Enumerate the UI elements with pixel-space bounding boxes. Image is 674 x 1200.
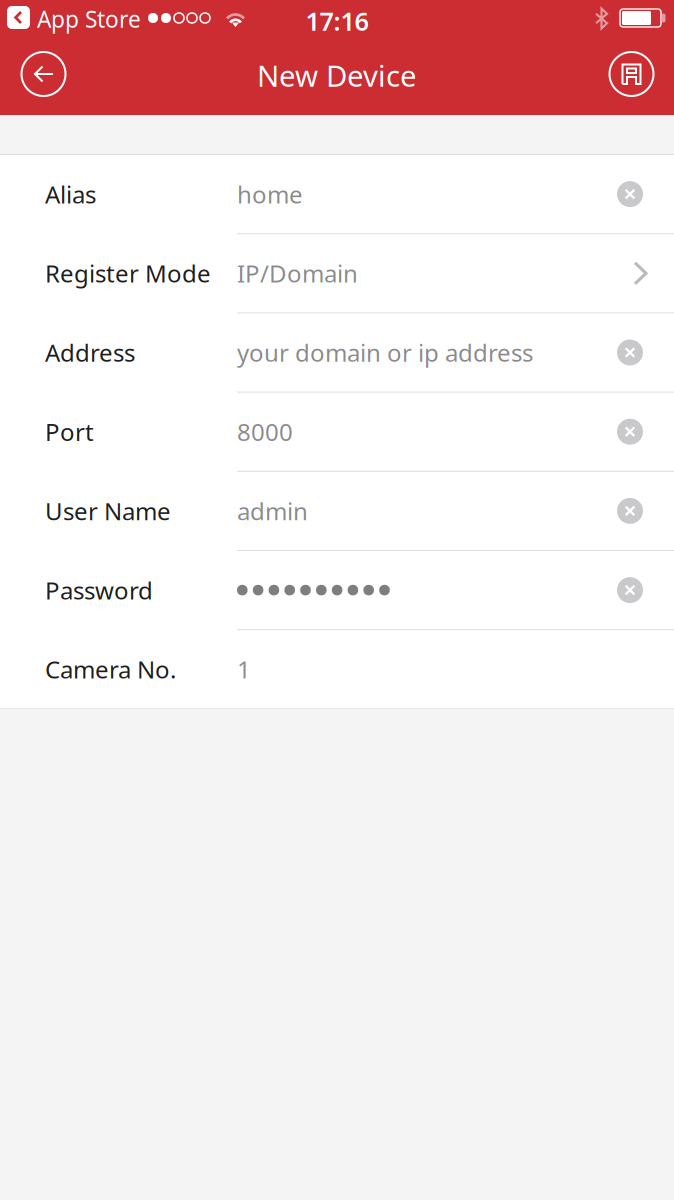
staticText: your domain or ip address	[237, 337, 533, 368]
staticText: IP/Domain	[237, 257, 358, 289]
button[interactable]: Port	[0, 393, 674, 471]
button[interactable]: Clear text	[617, 181, 643, 207]
staticText: 8000	[237, 416, 293, 448]
staticText: Camera No.	[45, 653, 176, 685]
staticText: Register Mode	[45, 257, 211, 289]
button[interactable]: Password	[0, 551, 674, 629]
button[interactable]: Clear text	[617, 498, 643, 524]
button[interactable]: Back	[21, 52, 65, 96]
staticText: App Store	[37, 4, 141, 34]
staticText: User Name	[45, 495, 171, 527]
button[interactable]: Save	[609, 52, 653, 96]
button[interactable]: Camera No.	[0, 630, 674, 708]
button[interactable]: Register Mode	[0, 234, 674, 312]
button[interactable]: Alias	[0, 155, 674, 233]
button[interactable]: Address	[0, 313, 674, 392]
staticText: Alias	[45, 178, 96, 210]
staticText: 17:16	[305, 4, 368, 38]
staticText: Address	[45, 337, 135, 368]
staticText: admin	[237, 495, 308, 527]
staticText: Password	[45, 574, 153, 606]
button[interactable]: User Name	[0, 472, 674, 550]
staticText: home	[237, 178, 303, 210]
staticText: Port	[45, 416, 94, 448]
staticText: New Device	[257, 56, 417, 95]
button[interactable]: Clear text	[617, 339, 643, 365]
button[interactable]: Clear text	[617, 577, 643, 603]
staticText: 1	[237, 653, 251, 685]
button[interactable]: Clear text	[617, 419, 643, 445]
